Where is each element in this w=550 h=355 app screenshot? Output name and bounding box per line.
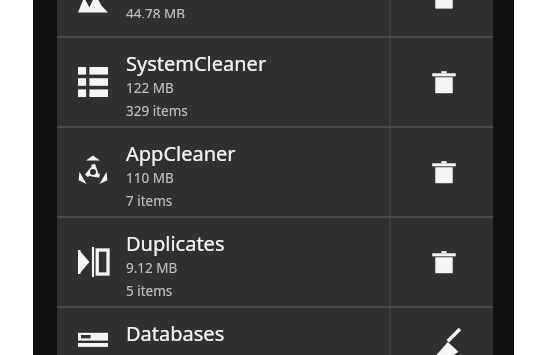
button[interactable]: AppCleaner [57,128,493,216]
button[interactable]: Delete [425,153,463,191]
staticText: AppCleaner [126,140,236,167]
staticText: 5 items [126,282,173,300]
staticText: 9.12 MB [126,259,178,277]
button[interactable]: Clean [425,326,463,355]
button[interactable]: Duplicates [57,218,493,306]
button[interactable]: Delete [425,63,463,101]
button[interactable]: Databases [57,308,493,355]
staticText: Databases [126,320,225,347]
staticText: 110 MB [126,169,174,187]
button[interactable]: Delete [425,243,463,281]
staticText: 44.78 MB [126,5,186,18]
button[interactable]: SystemCleaner [57,38,493,126]
button[interactable]: Delete [425,0,463,16]
staticText: 7 items [126,192,173,210]
staticText: Duplicates [126,230,225,257]
staticText: SystemCleaner [126,50,267,77]
button[interactable]: 7 items [57,0,493,36]
staticText: 122 MB [126,79,174,97]
staticText: 329 items [126,102,188,120]
